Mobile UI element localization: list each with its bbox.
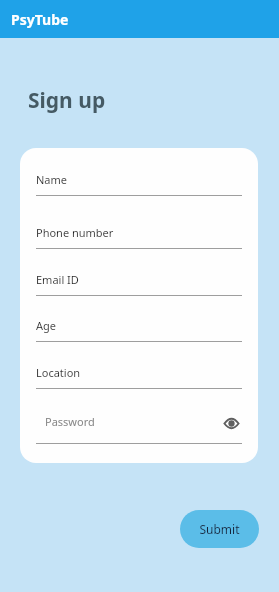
button[interactable]: Location — [36, 365, 242, 389]
button[interactable]: Show password — [220, 412, 242, 434]
button[interactable]: Age — [36, 318, 242, 342]
staticText: PsyTube — [11, 10, 69, 29]
staticText: Email ID — [36, 272, 79, 287]
staticText: Password — [45, 414, 95, 429]
staticText: Location — [36, 365, 81, 380]
button[interactable]: Name — [36, 172, 242, 196]
button[interactable]: Email ID — [36, 272, 242, 296]
staticText: Age — [36, 318, 56, 333]
button[interactable]: Phone number — [36, 225, 242, 249]
staticText: Submit — [199, 521, 240, 537]
button[interactable]: Password — [36, 412, 242, 444]
staticText: Phone number — [36, 225, 114, 240]
staticText: Sign up — [28, 86, 106, 115]
staticText: Name — [36, 172, 68, 187]
button[interactable]: Submit — [180, 510, 259, 548]
